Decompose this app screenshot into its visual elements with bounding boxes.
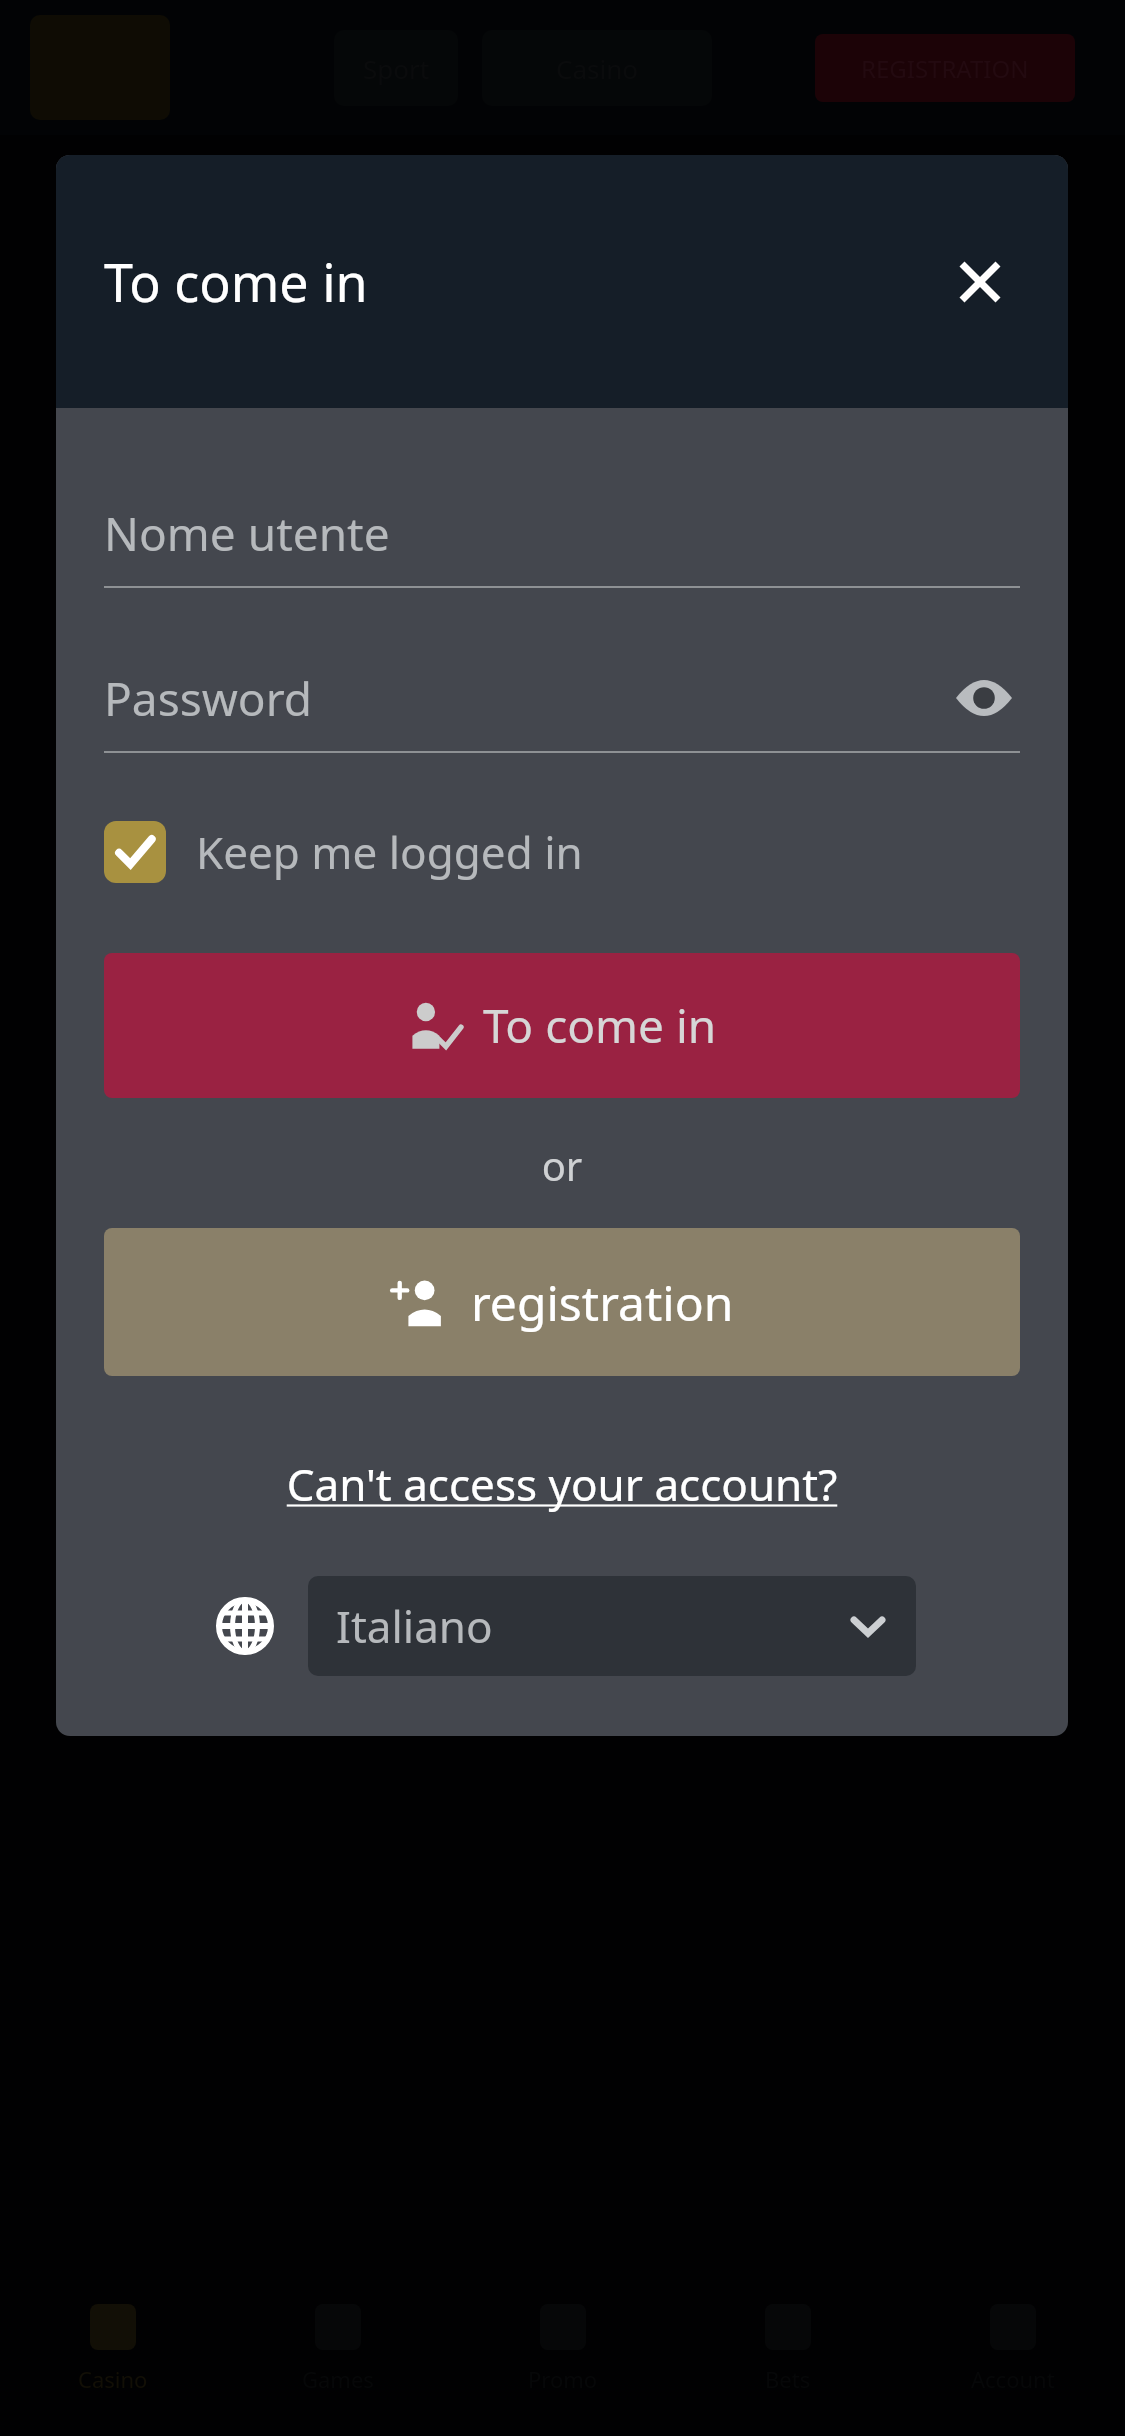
button[interactable]: To come in — [104, 953, 1020, 1098]
staticText: Italiano — [336, 1596, 493, 1656]
staticText: registration — [471, 1270, 734, 1335]
button[interactable]: Close — [940, 242, 1020, 322]
staticText: or — [104, 1138, 1020, 1192]
staticText: Nome utente — [104, 502, 390, 565]
staticText: Password — [104, 667, 313, 730]
button[interactable]: Password — [104, 643, 1020, 753]
staticText: To come in — [483, 994, 717, 1057]
staticText: Casino — [78, 2364, 148, 2394]
staticText: To come in — [104, 246, 368, 317]
button[interactable]: Nome utente — [104, 478, 1020, 588]
button[interactable]: Italiano — [308, 1576, 916, 1676]
button[interactable]: registration — [104, 1228, 1020, 1376]
button[interactable]: Casino — [0, 2261, 225, 2436]
staticText: Keep me logged in — [196, 822, 583, 882]
button[interactable]: Keep me logged in — [104, 821, 583, 883]
button[interactable]: Can't access your account? — [104, 1454, 1020, 1514]
button[interactable]: Show password — [948, 662, 1020, 734]
